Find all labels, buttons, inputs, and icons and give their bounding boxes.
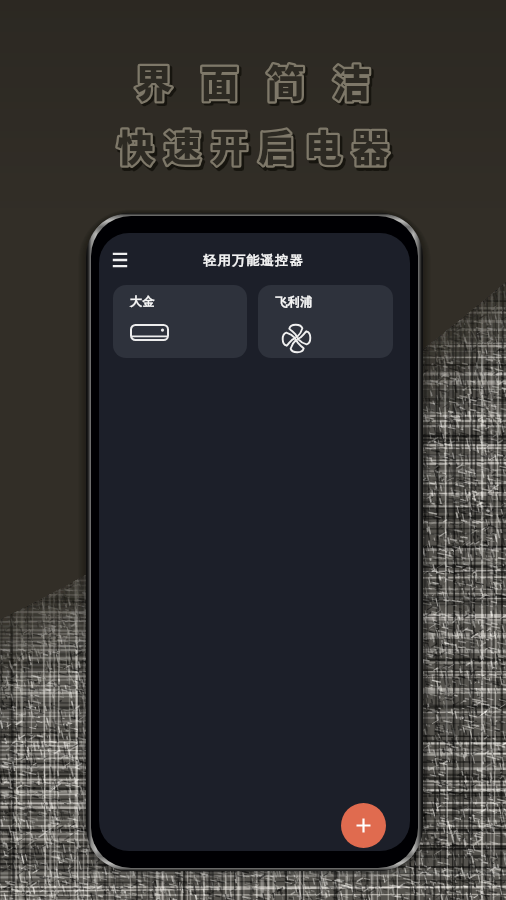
button[interactable]: 大金 xyxy=(113,285,247,358)
staticText: 大金 xyxy=(130,294,156,309)
button[interactable]: 飞利浦 xyxy=(258,285,393,358)
button[interactable]: Menu xyxy=(106,246,134,274)
staticText: 飞利浦 xyxy=(275,294,313,309)
staticText: 轻用万能遥控器 xyxy=(203,252,304,268)
button[interactable]: Add device xyxy=(341,803,386,848)
